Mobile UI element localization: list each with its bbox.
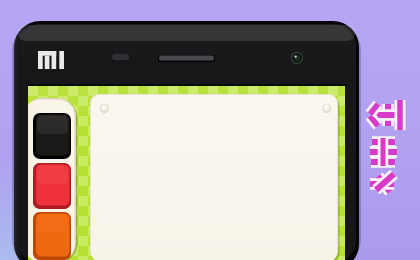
button[interactable]: Orange colour	[33, 212, 71, 260]
button[interactable]: Red colour	[33, 163, 71, 209]
button[interactable]: Drawing canvas	[90, 94, 338, 260]
button[interactable]: Black colour	[33, 113, 71, 159]
